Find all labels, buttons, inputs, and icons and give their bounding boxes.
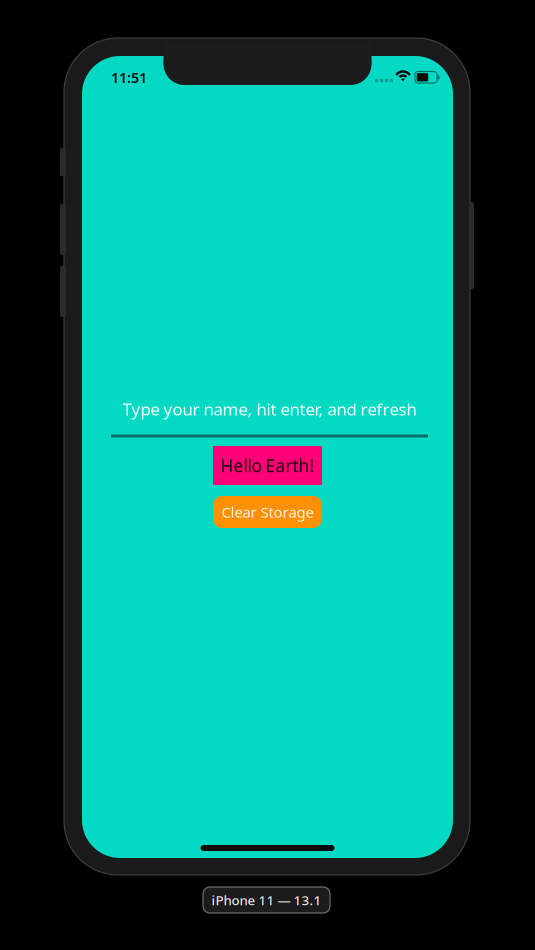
button[interactable]: Type your name, hit enter, and refresh: [111, 395, 428, 438]
staticText: Hello Earth!: [220, 454, 314, 477]
staticText: 11:51: [111, 68, 147, 87]
button[interactable]: iPhone 11 — 13.1: [203, 887, 330, 913]
staticText: Clear Storage: [221, 502, 313, 522]
staticText: iPhone 11 — 13.1: [211, 891, 321, 909]
button[interactable]: Hello Earth!: [213, 446, 322, 485]
button[interactable]: Clear Storage: [213, 496, 322, 528]
staticText: Type your name, hit enter, and refresh: [122, 397, 416, 420]
